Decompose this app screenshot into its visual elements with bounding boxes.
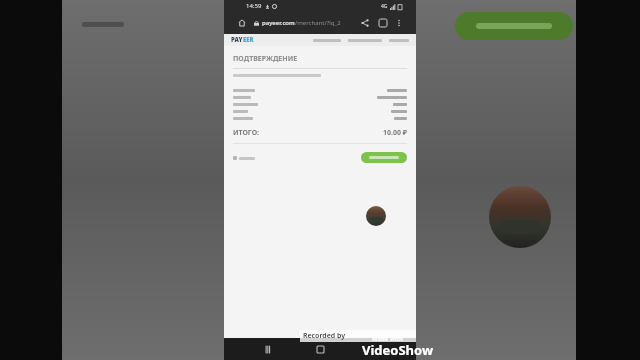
- button[interactable]: Back: [363, 339, 383, 359]
- staticText: /merchant/?lq_2: [295, 19, 341, 27]
- button[interactable]: Recents: [257, 339, 277, 359]
- staticText: 14:59: [246, 2, 262, 10]
- button[interactable]: Home: [310, 339, 330, 359]
- button[interactable]: More options: [393, 17, 405, 29]
- staticText: Made with: [372, 335, 403, 343]
- button[interactable]: [455, 12, 573, 40]
- button[interactable]: Home: [235, 16, 249, 30]
- button[interactable]: [361, 152, 407, 163]
- staticText: PAY: [231, 36, 243, 44]
- button[interactable]: payeer.com: [262, 19, 358, 27]
- staticText: EER: [243, 36, 254, 44]
- button[interactable]: [233, 156, 255, 160]
- staticText: ПОДТВЕРЖДЕНИЕ: [233, 54, 298, 64]
- button[interactable]: PAY: [231, 36, 254, 44]
- button[interactable]: Profile photo: [366, 206, 386, 226]
- button[interactable]: Tabs: [376, 16, 390, 30]
- button[interactable]: Share: [358, 16, 372, 30]
- staticText: Recorded by: [303, 331, 346, 341]
- staticText: ИТОГО:: [233, 128, 260, 138]
- staticText: VideoShow: [362, 341, 434, 359]
- staticText: 10.00 ₽: [382, 128, 407, 138]
- staticText: 4G: [381, 3, 388, 10]
- staticText: payeer.com: [262, 19, 295, 27]
